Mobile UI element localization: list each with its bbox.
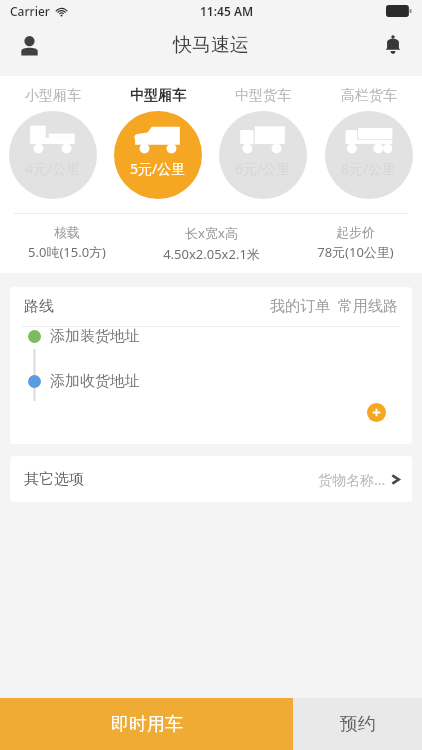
staticText: 快马速运 — [173, 33, 249, 57]
staticText: 5.0吨(15.0方) — [28, 243, 106, 261]
staticText: 添加收货地址 — [50, 372, 140, 391]
button[interactable]: 高栏货车 — [316, 87, 422, 199]
staticText: 即时用车 — [111, 713, 183, 736]
button[interactable]: Add stop — [367, 403, 386, 422]
staticText: 8元/公里 — [341, 159, 397, 178]
button[interactable]: 即时用车 — [0, 698, 293, 750]
staticText: 长x宽x高 — [185, 224, 238, 242]
staticText: 我的订单 — [270, 297, 330, 316]
button[interactable]: 中型厢车 — [105, 87, 210, 199]
staticText: 6元/公里 — [235, 159, 291, 178]
staticText: 预约 — [340, 713, 376, 736]
button[interactable]: Profile — [8, 24, 50, 66]
staticText: Carrier — [10, 3, 50, 19]
button[interactable]: 添加收货地址 — [10, 372, 412, 391]
staticText: 5元/公里 — [130, 159, 186, 178]
staticText: 高栏货车 — [341, 87, 397, 105]
staticText: 起步价 — [336, 224, 375, 240]
staticText: 核载 — [54, 224, 80, 240]
staticText: 中型厢车 — [130, 87, 186, 105]
button[interactable]: 常用线路 — [338, 297, 398, 316]
button[interactable]: 中型货车 — [210, 87, 316, 199]
button[interactable]: 小型厢车 — [0, 87, 105, 199]
staticText: 78元(10公里) — [317, 243, 394, 261]
button[interactable]: 预约 — [293, 698, 422, 750]
button[interactable]: 添加装货地址 — [10, 327, 412, 346]
staticText: 中型货车 — [235, 87, 291, 105]
staticText: 11:45 AM — [200, 3, 254, 19]
staticText: 4元/公里 — [25, 159, 81, 178]
staticText: 路线 — [24, 297, 54, 316]
button[interactable]: 我的订单 — [270, 297, 330, 316]
staticText: 小型厢车 — [25, 87, 81, 105]
staticText: 其它选项 — [24, 470, 84, 489]
staticText: 4.50x2.05x2.1米 — [163, 245, 260, 263]
staticText: 货物名称... — [318, 470, 386, 489]
button[interactable]: Notifications — [372, 24, 414, 66]
button[interactable]: 其它选项 — [10, 456, 412, 502]
staticText: 添加装货地址 — [50, 327, 140, 346]
staticText: 常用线路 — [338, 297, 398, 316]
